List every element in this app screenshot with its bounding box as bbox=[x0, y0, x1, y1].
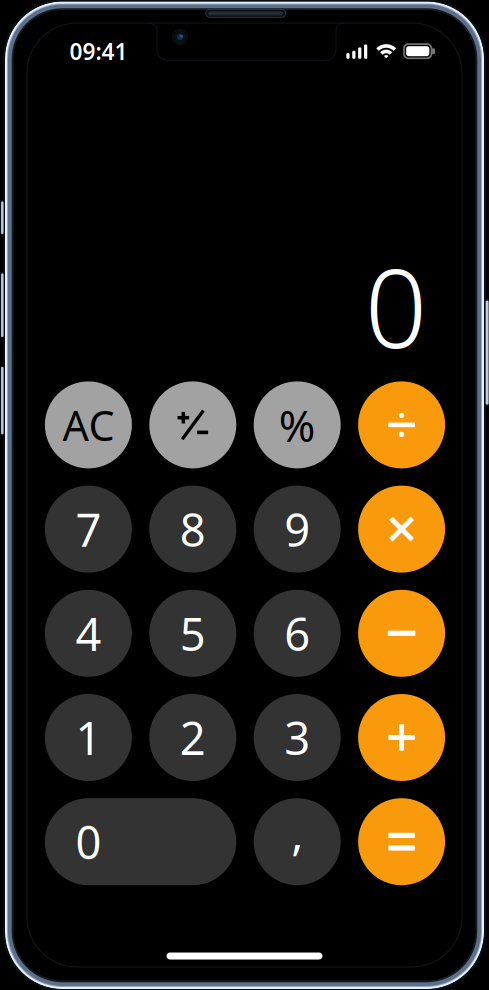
button[interactable]: 6 bbox=[254, 590, 341, 677]
button[interactable]: 7 bbox=[45, 486, 132, 573]
staticText: 0 bbox=[365, 233, 427, 378]
button[interactable]: , bbox=[254, 798, 341, 885]
staticText: 8 bbox=[180, 499, 206, 559]
staticText: 9 bbox=[284, 499, 310, 559]
staticText: 7 bbox=[75, 499, 101, 559]
staticText: 5 bbox=[180, 603, 206, 663]
button[interactable]: 1 bbox=[45, 694, 132, 781]
button[interactable] bbox=[358, 486, 445, 573]
staticText: 2 bbox=[180, 707, 206, 768]
button[interactable]: 0 bbox=[45, 798, 236, 885]
staticText: 0 bbox=[75, 812, 101, 872]
button[interactable] bbox=[358, 381, 445, 468]
button[interactable] bbox=[149, 381, 236, 468]
staticText: AC bbox=[62, 397, 114, 452]
button[interactable] bbox=[358, 694, 445, 781]
staticText: 6 bbox=[284, 603, 310, 663]
button[interactable]: 4 bbox=[45, 590, 132, 677]
button[interactable] bbox=[358, 590, 445, 677]
button[interactable]: 2 bbox=[149, 694, 236, 781]
staticText: % bbox=[279, 396, 316, 454]
button[interactable]: 3 bbox=[254, 694, 341, 781]
staticText: 4 bbox=[75, 603, 101, 663]
button[interactable] bbox=[358, 798, 445, 885]
staticText: 3 bbox=[284, 707, 310, 768]
button[interactable]: 9 bbox=[254, 486, 341, 573]
button[interactable]: 5 bbox=[149, 590, 236, 677]
button[interactable]: 8 bbox=[149, 486, 236, 573]
staticText: , bbox=[291, 803, 303, 863]
button[interactable]: AC bbox=[45, 381, 132, 468]
button[interactable]: % bbox=[254, 381, 341, 468]
staticText: 09:41 bbox=[69, 36, 127, 66]
staticText: 1 bbox=[75, 707, 101, 768]
